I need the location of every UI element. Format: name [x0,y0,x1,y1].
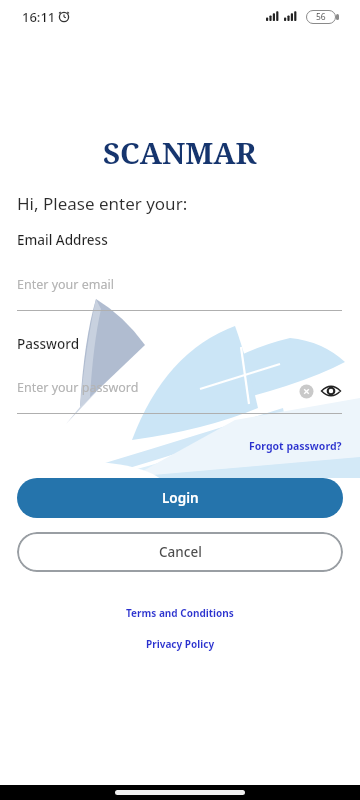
staticText: Hi, Please enter your: [17,192,188,215]
button[interactable]: Cancel [17,532,343,572]
staticText: SCANMAR [103,132,257,172]
staticText: Login [162,489,199,507]
staticText: Enter your password [17,379,139,396]
staticText: 16:11 [22,8,56,26]
staticText: Email Address [17,231,108,249]
button[interactable]: Terms and Conditions [126,606,234,620]
button[interactable]: Forgot password? [249,439,342,453]
staticText: 56 [316,11,326,23]
staticText: Cancel [159,543,202,561]
staticText: Enter your email [17,276,114,293]
staticText: Password [17,335,80,353]
button[interactable]: Privacy Policy [146,637,215,651]
button[interactable]: Login [17,478,343,518]
